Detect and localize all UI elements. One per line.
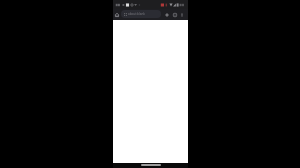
button[interactable]: New tab (163, 9, 171, 20)
button[interactable]: More options (178, 9, 185, 20)
staticText: about:blank (128, 12, 145, 16)
button[interactable]: about:blank (121, 10, 161, 18)
button[interactable]: Home (113, 9, 121, 20)
button[interactable]: Switch tabs (171, 9, 179, 20)
